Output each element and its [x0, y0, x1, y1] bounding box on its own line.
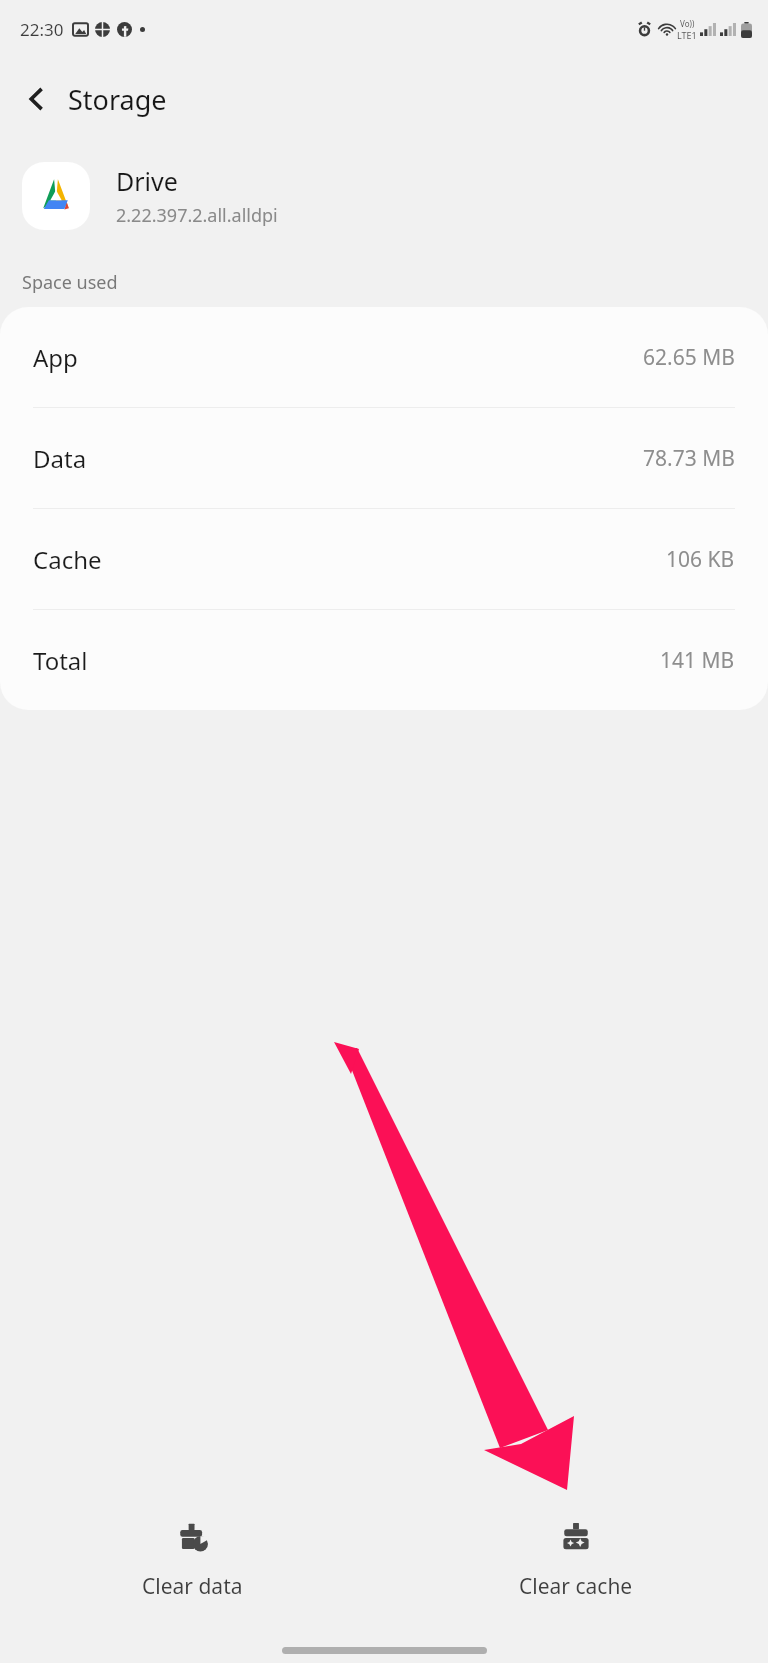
button[interactable]: Back	[10, 73, 62, 125]
button[interactable]: Total	[0, 610, 768, 710]
staticText: Cache	[33, 543, 102, 576]
button[interactable]: Data	[0, 408, 768, 508]
staticText: 106 KB	[666, 545, 735, 574]
staticText: 2.22.397.2.all.alldpi	[116, 203, 278, 228]
button[interactable]: Clear data	[0, 1503, 384, 1615]
staticText: Clear cache	[519, 1572, 633, 1601]
staticText: Total	[33, 644, 88, 677]
staticText: Space used	[22, 270, 118, 295]
button[interactable]: Clear cache	[384, 1503, 768, 1615]
staticText: 22:30	[20, 18, 64, 41]
other: Clear data	[171, 1517, 213, 1559]
staticText: Drive	[116, 164, 178, 198]
staticText: Clear data	[142, 1572, 243, 1601]
button[interactable]: Cache	[0, 509, 768, 609]
staticText: 62.65 MB	[643, 343, 735, 372]
staticText: 78.73 MB	[643, 444, 735, 473]
button[interactable]: App	[0, 307, 768, 407]
staticText: 141 MB	[660, 646, 735, 675]
staticText: App	[33, 341, 78, 374]
other: Clear cache	[555, 1517, 597, 1559]
staticText: Data	[33, 442, 87, 475]
staticText: LTE1	[677, 29, 697, 41]
staticText: Storage	[68, 81, 167, 118]
staticText: Vo))	[680, 18, 695, 29]
